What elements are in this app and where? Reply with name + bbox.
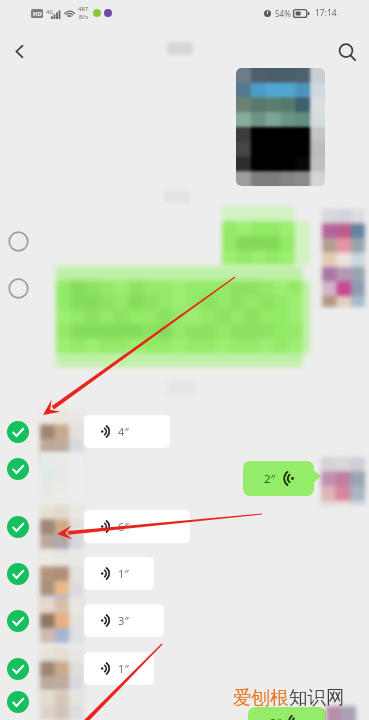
button[interactable]: 2″ — [248, 707, 326, 720]
button[interactable]: 4″ — [84, 415, 170, 448]
button[interactable]: Selected — [7, 691, 29, 713]
button[interactable]: 2″ — [243, 461, 321, 496]
staticText: 爱刨根 — [233, 686, 289, 709]
button[interactable]: Selected — [7, 610, 29, 632]
staticText: 知识网 — [289, 686, 345, 709]
button[interactable]: Selected — [7, 516, 29, 538]
staticText: 17:14 — [315, 7, 337, 19]
staticText: 2″ — [264, 471, 276, 487]
button[interactable]: 1″ — [84, 557, 154, 590]
staticText: 4G — [46, 8, 54, 15]
button[interactable]: Selected — [7, 421, 29, 443]
staticText: 487 — [78, 5, 89, 13]
button[interactable]: Select message — [8, 231, 29, 252]
staticText: 1″ — [118, 661, 129, 676]
button[interactable]: Selected — [7, 458, 29, 480]
staticText: HD — [33, 10, 42, 18]
staticText: 4″ — [118, 424, 129, 439]
button[interactable]: 3″ — [84, 604, 164, 637]
button[interactable]: Search — [325, 29, 369, 75]
staticText: B/s — [79, 13, 89, 21]
button[interactable]: Back — [0, 28, 42, 74]
button[interactable]: Selected — [7, 563, 29, 585]
button[interactable]: 1″ — [84, 652, 154, 685]
staticText: 6″ — [118, 519, 129, 534]
staticText: 2″ — [270, 715, 281, 720]
button[interactable]: Selected — [7, 658, 29, 680]
button[interactable]: Photo message — [236, 68, 325, 186]
button[interactable]: Select message — [8, 278, 29, 299]
staticText: 54% — [275, 8, 291, 19]
button[interactable]: 6″ — [84, 510, 190, 543]
staticText: 3″ — [118, 613, 129, 628]
staticText: 1″ — [118, 566, 129, 581]
